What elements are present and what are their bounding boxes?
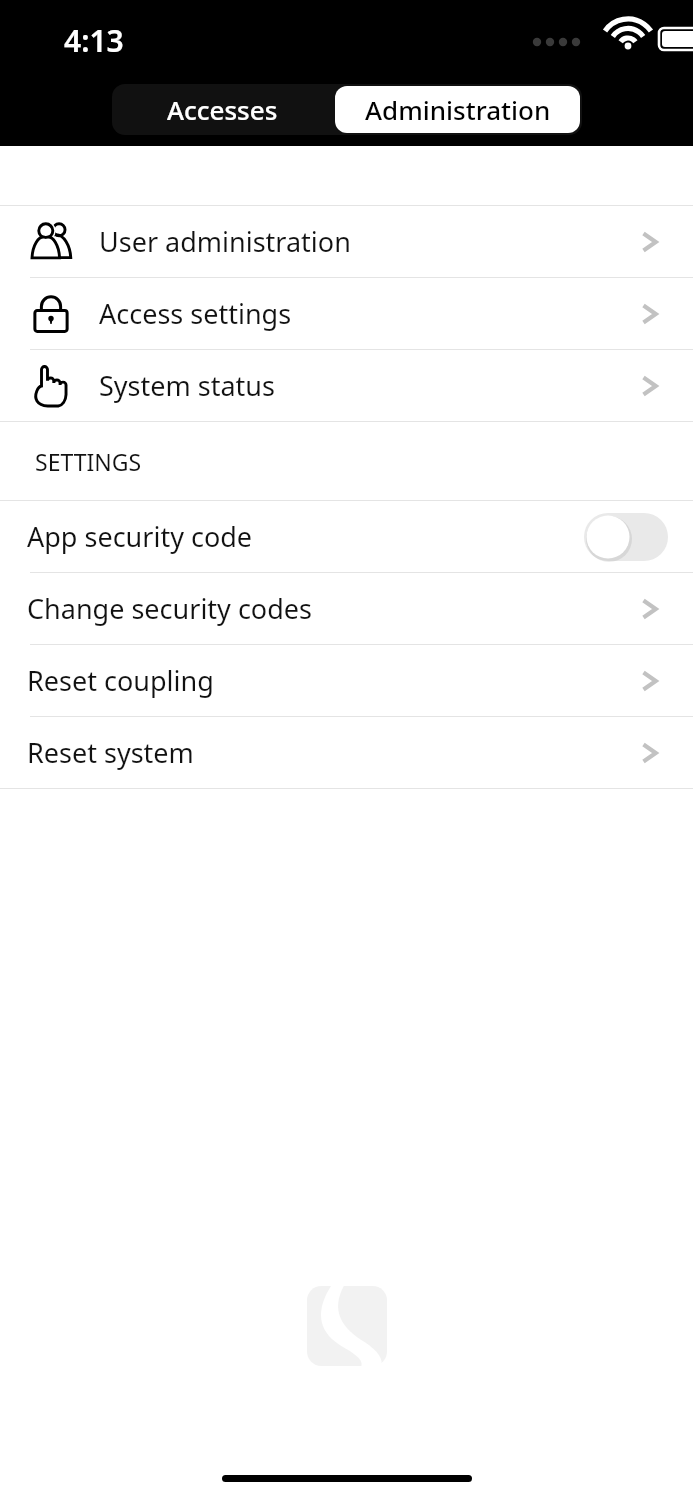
staticText: App security code <box>27 518 584 555</box>
staticText: Administration <box>365 92 551 127</box>
staticText: User administration <box>99 223 637 260</box>
other: Lock <box>25 288 77 340</box>
staticText: Reset coupling <box>27 662 637 699</box>
button[interactable]: Accesses <box>112 84 333 135</box>
staticText: System status <box>99 367 637 404</box>
button[interactable]: Hand <box>0 350 693 421</box>
other: Hand <box>25 360 77 412</box>
other: Users <box>25 216 77 268</box>
button[interactable]: Reset system <box>0 717 693 788</box>
staticText: 4:13 <box>64 20 124 61</box>
staticText: Change security codes <box>27 590 637 627</box>
button[interactable]: Reset coupling <box>0 645 693 716</box>
button[interactable]: Administration <box>335 86 580 133</box>
button[interactable]: Users <box>0 206 693 277</box>
staticText: SETTINGS <box>35 446 142 477</box>
staticText: Access settings <box>99 295 637 332</box>
button[interactable]: Change security codes <box>0 573 693 644</box>
button[interactable]: App security code <box>0 501 693 572</box>
staticText: Accesses <box>167 92 278 127</box>
button[interactable]: App security code toggle <box>584 513 668 561</box>
button[interactable]: Lock <box>0 278 693 349</box>
staticText: Reset system <box>27 734 637 771</box>
